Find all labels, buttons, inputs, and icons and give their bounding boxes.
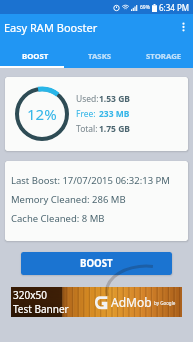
button[interactable]: 320x50: [11, 287, 182, 317]
staticText: 6:34 PM: [159, 2, 190, 13]
staticText: Used:: [76, 93, 99, 105]
button[interactable]: BOOST: [3, 42, 68, 70]
staticText: Memory Cleaned: 286 MB: [11, 193, 126, 206]
staticText: Last Boost: 17/07/2015 06:32:13 PM: [11, 174, 170, 187]
staticText: Easy RAM Booster: [4, 20, 98, 35]
staticText: STORAGE: [146, 51, 182, 62]
staticText: Total:: [76, 123, 98, 135]
staticText: Cache Cleaned: 8 MB: [11, 212, 105, 225]
button[interactable]: BOOST: [21, 252, 172, 275]
staticText: 1.53 GB: [99, 93, 130, 105]
staticText: 233 MB: [99, 108, 130, 120]
staticText: BOOST: [22, 51, 49, 62]
staticText: by Google: [154, 300, 176, 306]
staticText: BOOST: [80, 257, 113, 270]
staticText: Test Banner: [13, 302, 69, 316]
staticText: AdMob: [111, 294, 152, 310]
button[interactable]: STORAGE: [132, 42, 193, 70]
staticText: 320x50: [13, 288, 47, 302]
staticText: Free:: [76, 108, 96, 120]
button[interactable]: TASKS: [68, 42, 132, 70]
staticText: 12%: [27, 104, 57, 124]
staticText: 1.75 GB: [99, 123, 130, 135]
staticText: 69%: [140, 4, 150, 11]
staticText: TASKS: [88, 51, 112, 62]
button[interactable]: More options: [173, 14, 193, 40]
